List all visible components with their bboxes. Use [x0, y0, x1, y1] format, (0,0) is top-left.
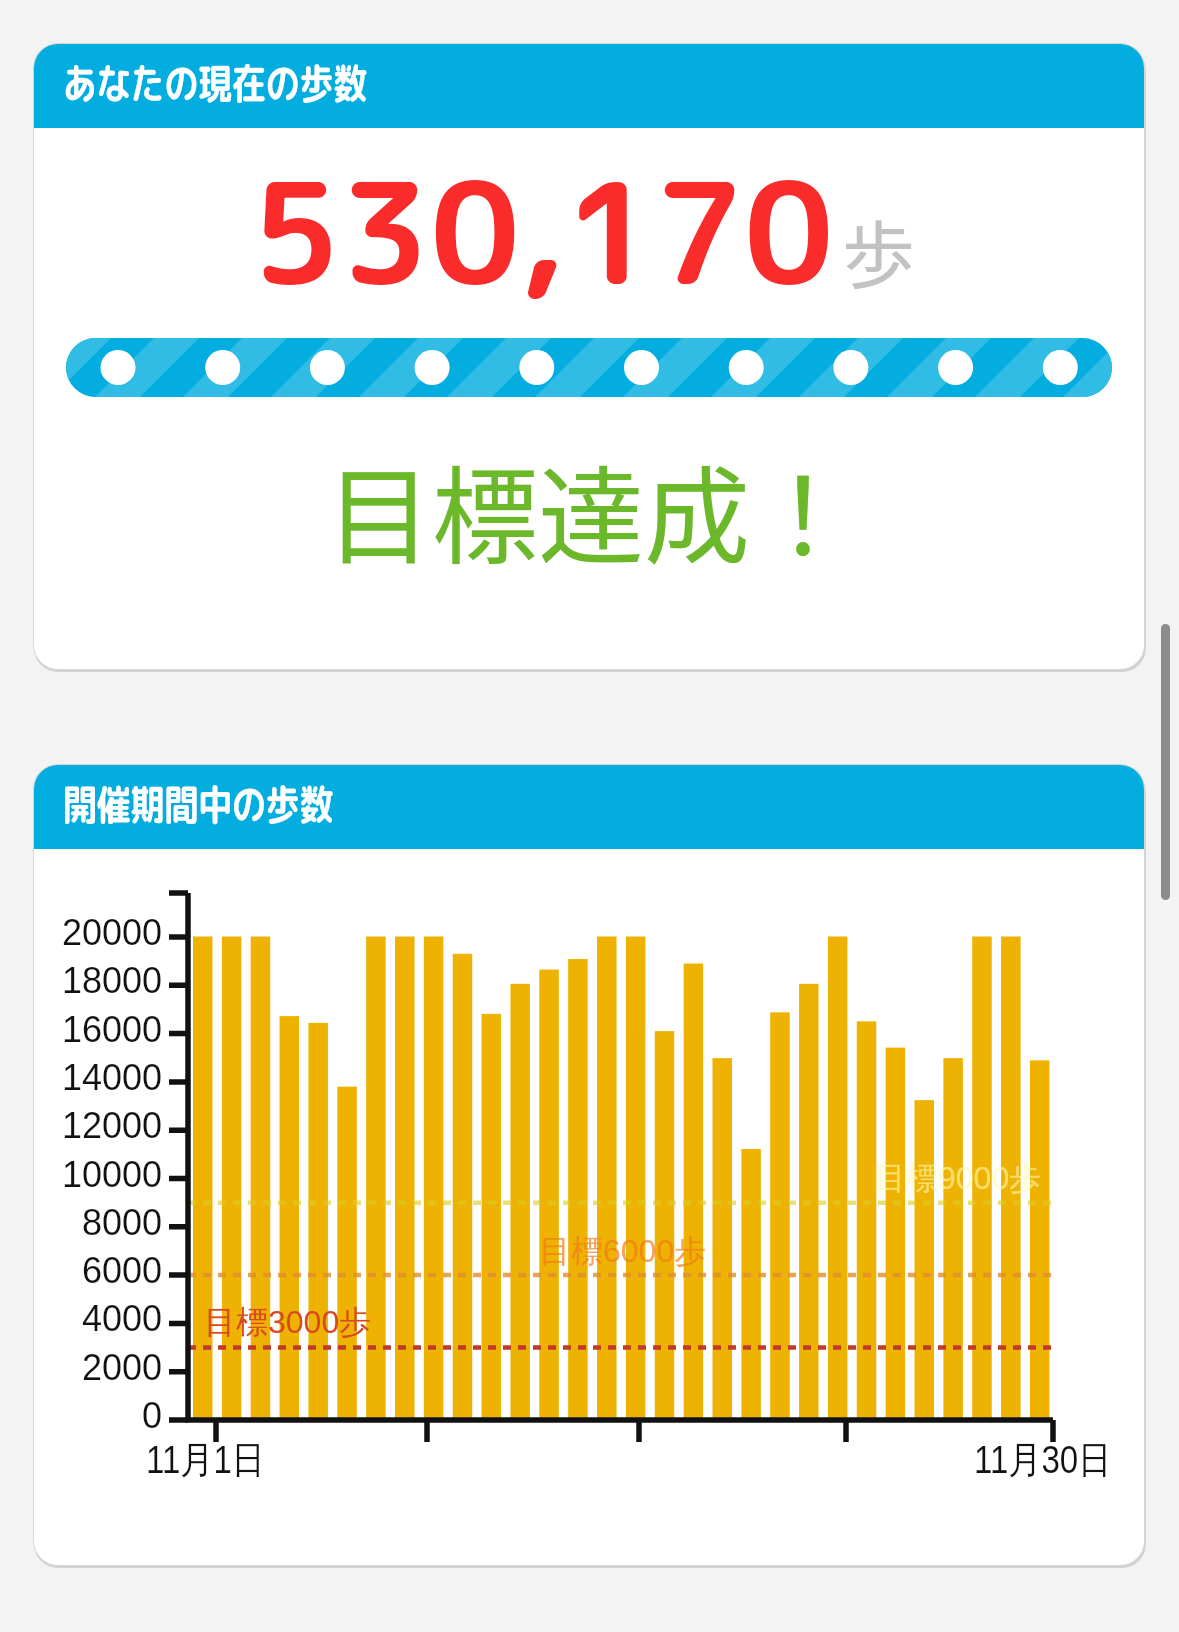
- staticText: 18000: [34, 960, 162, 1000]
- staticText: 開催期間中の歩数: [63, 775, 334, 834]
- staticText: 2000: [34, 1347, 162, 1387]
- staticText: 目標6000歩: [539, 1231, 707, 1271]
- staticText: 10000: [34, 1154, 162, 1194]
- staticText: 11月30日: [974, 1436, 1111, 1484]
- staticText: 目標9000歩: [874, 1158, 1042, 1198]
- staticText: 目標達成！: [36, 432, 1144, 585]
- staticText: 20000: [34, 912, 162, 952]
- staticText: 6000: [34, 1250, 162, 1290]
- staticText: 11月1日: [146, 1436, 265, 1484]
- staticText: 14000: [34, 1057, 162, 1097]
- staticText: 0: [34, 1395, 162, 1435]
- staticText: 16000: [34, 1009, 162, 1049]
- button[interactable]: 開催期間中の歩数: [34, 765, 1144, 1565]
- staticText: 8000: [34, 1202, 162, 1242]
- staticText: 12000: [34, 1105, 162, 1145]
- staticText: 4000: [34, 1298, 162, 1338]
- staticText: 歩: [842, 197, 915, 303]
- staticText: 目標3000歩: [204, 1302, 372, 1342]
- staticText: 530,170: [251, 133, 834, 328]
- button[interactable]: あなたの現在の歩数: [34, 44, 1144, 669]
- staticText: あなたの現在の歩数: [63, 54, 368, 113]
